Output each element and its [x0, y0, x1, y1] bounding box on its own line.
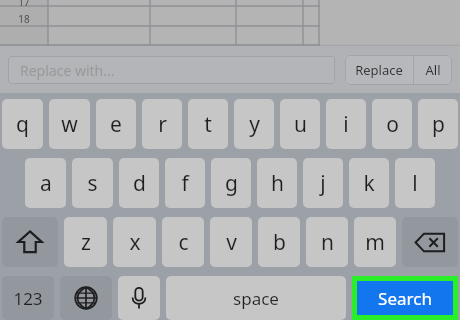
- staticText: All: [425, 61, 441, 79]
- staticText: space: [233, 287, 279, 310]
- button[interactable]: w: [49, 99, 90, 149]
- button[interactable]: t: [188, 99, 228, 149]
- staticText: Search: [378, 287, 432, 310]
- staticText: s: [87, 169, 98, 198]
- button[interactable]: h: [257, 158, 297, 208]
- button[interactable]: m: [354, 217, 396, 267]
- staticText: h: [271, 169, 284, 198]
- button[interactable]: y: [234, 99, 274, 149]
- staticText: e: [110, 110, 122, 139]
- button[interactable]: space: [166, 276, 346, 320]
- button[interactable]: e: [96, 99, 136, 149]
- button[interactable]: v: [210, 217, 252, 267]
- button[interactable]: c: [162, 217, 204, 267]
- button[interactable]: k: [349, 158, 389, 208]
- staticText: m: [365, 228, 385, 257]
- button[interactable]: s: [72, 158, 113, 208]
- staticText: o: [386, 110, 399, 139]
- button[interactable]: i: [326, 99, 366, 149]
- staticText: x: [129, 228, 141, 257]
- button[interactable]: l: [395, 158, 435, 208]
- staticText: c: [178, 228, 189, 257]
- button[interactable]: Shift: [2, 217, 58, 267]
- button[interactable]: Backspace: [402, 217, 458, 267]
- button[interactable]: Search: [357, 281, 453, 315]
- button[interactable]: u: [280, 99, 320, 149]
- staticText: v: [226, 228, 237, 257]
- staticText: f: [181, 169, 189, 198]
- staticText: t: [204, 110, 212, 139]
- staticText: p: [432, 110, 445, 139]
- button[interactable]: p: [418, 99, 458, 149]
- button[interactable]: All: [414, 55, 452, 85]
- button[interactable]: f: [165, 158, 205, 208]
- button[interactable]: Replace with...: [8, 56, 335, 84]
- staticText: Replace with...: [20, 61, 115, 80]
- staticText: q: [16, 110, 29, 139]
- staticText: g: [225, 169, 238, 198]
- staticText: w: [61, 110, 78, 139]
- button[interactable]: Replace: [345, 55, 413, 85]
- staticText: l: [412, 169, 418, 198]
- button[interactable]: j: [303, 158, 343, 208]
- staticText: 123: [13, 287, 43, 310]
- button[interactable]: o: [372, 99, 412, 149]
- button[interactable]: a: [25, 158, 66, 208]
- staticText: y: [249, 110, 260, 139]
- staticText: r: [158, 110, 167, 139]
- staticText: j: [320, 169, 326, 198]
- staticText: i: [343, 110, 349, 139]
- button[interactable]: r: [142, 99, 182, 149]
- button[interactable]: q: [2, 99, 43, 149]
- staticText: n: [321, 228, 334, 257]
- staticText: 17: [18, 0, 30, 9]
- button[interactable]: g: [211, 158, 251, 208]
- staticText: d: [133, 169, 146, 198]
- button[interactable]: Dictate: [118, 276, 160, 320]
- staticText: z: [81, 228, 91, 257]
- button[interactable]: n: [306, 217, 348, 267]
- staticText: 18: [18, 12, 30, 26]
- button[interactable]: 123: [2, 276, 54, 320]
- staticText: Replace: [355, 61, 403, 79]
- button[interactable]: d: [119, 158, 159, 208]
- staticText: b: [273, 228, 286, 257]
- button[interactable]: Change keyboard language: [60, 276, 112, 320]
- button[interactable]: z: [64, 217, 107, 267]
- staticText: k: [363, 169, 375, 198]
- staticText: a: [40, 169, 52, 198]
- staticText: u: [294, 110, 307, 139]
- button[interactable]: x: [113, 217, 156, 267]
- button[interactable]: b: [258, 217, 300, 267]
